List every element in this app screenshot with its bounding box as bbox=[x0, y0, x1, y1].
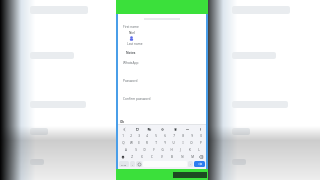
button[interactable]: Confirm password bbox=[123, 97, 201, 101]
button[interactable]: 1 bbox=[119, 132, 127, 139]
button[interactable]: WhatsApp bbox=[123, 61, 201, 65]
button[interactable]: Theme bbox=[172, 126, 178, 132]
button[interactable]: B bbox=[167, 153, 177, 160]
button[interactable]: J bbox=[176, 146, 185, 153]
button[interactable]: Previous bbox=[121, 126, 127, 132]
button[interactable]: P bbox=[196, 139, 205, 146]
button[interactable]: O bbox=[187, 139, 196, 146]
staticText: G bbox=[161, 148, 164, 152]
staticText: First name bbox=[123, 25, 139, 29]
button[interactable]: 8 bbox=[178, 132, 187, 139]
button[interactable]: 4 bbox=[143, 132, 151, 139]
button[interactable]: ?123 bbox=[119, 161, 129, 167]
button[interactable]: Z bbox=[127, 153, 137, 160]
button[interactable]: Voice input bbox=[197, 126, 203, 132]
staticText: R bbox=[146, 141, 148, 145]
button[interactable]: , bbox=[130, 161, 135, 167]
button[interactable]: 6 bbox=[160, 132, 169, 139]
staticText: Confirm password bbox=[123, 97, 151, 101]
button[interactable]: Autofill password bbox=[129, 36, 134, 41]
staticText: S bbox=[135, 148, 137, 152]
button[interactable]: Q bbox=[119, 139, 127, 146]
staticText: W bbox=[130, 141, 133, 145]
staticText: 8 bbox=[182, 134, 184, 138]
button[interactable]: Last name bbox=[127, 42, 201, 46]
staticText: Niel bbox=[129, 31, 135, 35]
button[interactable]: 3 bbox=[135, 132, 143, 139]
button[interactable]: Backspace bbox=[197, 153, 205, 160]
button[interactable]: A bbox=[121, 146, 131, 153]
staticText: 4 bbox=[146, 134, 148, 138]
button[interactable]: 5 bbox=[151, 132, 160, 139]
staticText: 6 bbox=[164, 134, 166, 138]
staticText: 5 bbox=[155, 134, 157, 138]
staticText: L bbox=[198, 148, 200, 152]
button[interactable]: M bbox=[187, 153, 197, 160]
staticText: X bbox=[141, 155, 143, 159]
staticText: E bbox=[138, 141, 140, 145]
staticText: A bbox=[125, 148, 127, 152]
button[interactable]: W bbox=[127, 139, 135, 146]
staticText: 0 bbox=[200, 134, 202, 138]
button[interactable]: N bbox=[177, 153, 187, 160]
staticText: V bbox=[161, 155, 163, 159]
button[interactable]: D bbox=[140, 146, 149, 153]
staticText: ?123 bbox=[121, 163, 127, 166]
button[interactable]: C bbox=[147, 153, 157, 160]
button[interactable]: Translate bbox=[146, 126, 152, 132]
button[interactable]: X bbox=[137, 153, 147, 160]
button[interactable]: H bbox=[167, 146, 176, 153]
button[interactable]: 9 bbox=[187, 132, 196, 139]
button[interactable]: Emoji bbox=[136, 161, 142, 167]
staticText: , bbox=[132, 162, 133, 166]
button[interactable]: 7 bbox=[169, 132, 178, 139]
button[interactable]: L bbox=[194, 146, 203, 153]
staticText: N bbox=[181, 155, 184, 159]
button[interactable]: T bbox=[151, 139, 160, 146]
button[interactable]: First name bbox=[123, 25, 201, 29]
staticText: WhatsApp bbox=[123, 61, 139, 65]
button[interactable]: Y bbox=[160, 139, 169, 146]
staticText: H bbox=[170, 148, 173, 152]
staticText: 2 bbox=[130, 134, 132, 138]
button[interactable]: R bbox=[143, 139, 151, 146]
button[interactable]: Password bbox=[123, 79, 201, 83]
button[interactable]: I bbox=[178, 139, 187, 146]
staticText: M bbox=[191, 155, 194, 159]
staticText: Ok bbox=[120, 120, 125, 124]
staticText: Q bbox=[122, 141, 125, 145]
staticText: P bbox=[200, 141, 202, 145]
staticText: Password bbox=[123, 79, 138, 83]
staticText: J bbox=[180, 148, 181, 152]
staticText: 3 bbox=[138, 134, 140, 138]
staticText: D bbox=[143, 148, 146, 152]
button[interactable]: S bbox=[131, 146, 140, 153]
staticText: T bbox=[155, 141, 157, 145]
button[interactable]: V bbox=[157, 153, 167, 160]
button[interactable]: U bbox=[169, 139, 178, 146]
staticText: 1 bbox=[122, 134, 124, 138]
staticText: U bbox=[172, 141, 175, 145]
staticText: 9 bbox=[191, 134, 193, 138]
button[interactable]: F bbox=[149, 146, 158, 153]
button[interactable]: Settings bbox=[159, 126, 165, 132]
button[interactable]: Notes bbox=[126, 51, 201, 55]
button[interactable]: 2 bbox=[127, 132, 135, 139]
button[interactable]: K bbox=[185, 146, 194, 153]
button[interactable]: Shift bbox=[119, 153, 127, 160]
staticText: C bbox=[151, 155, 153, 159]
button[interactable]: 0 bbox=[196, 132, 205, 139]
staticText: . bbox=[190, 162, 191, 166]
staticText: O bbox=[190, 141, 193, 145]
button[interactable]: Clipboard bbox=[134, 126, 140, 132]
button[interactable]: G bbox=[158, 146, 167, 153]
staticText: F bbox=[153, 148, 155, 152]
staticText: Z bbox=[131, 155, 133, 159]
button[interactable]: Enter bbox=[194, 161, 205, 167]
button[interactable]: E bbox=[135, 139, 143, 146]
button[interactable]: More bbox=[184, 126, 190, 132]
staticText: Notes bbox=[126, 51, 136, 55]
button[interactable]: . bbox=[188, 161, 193, 167]
